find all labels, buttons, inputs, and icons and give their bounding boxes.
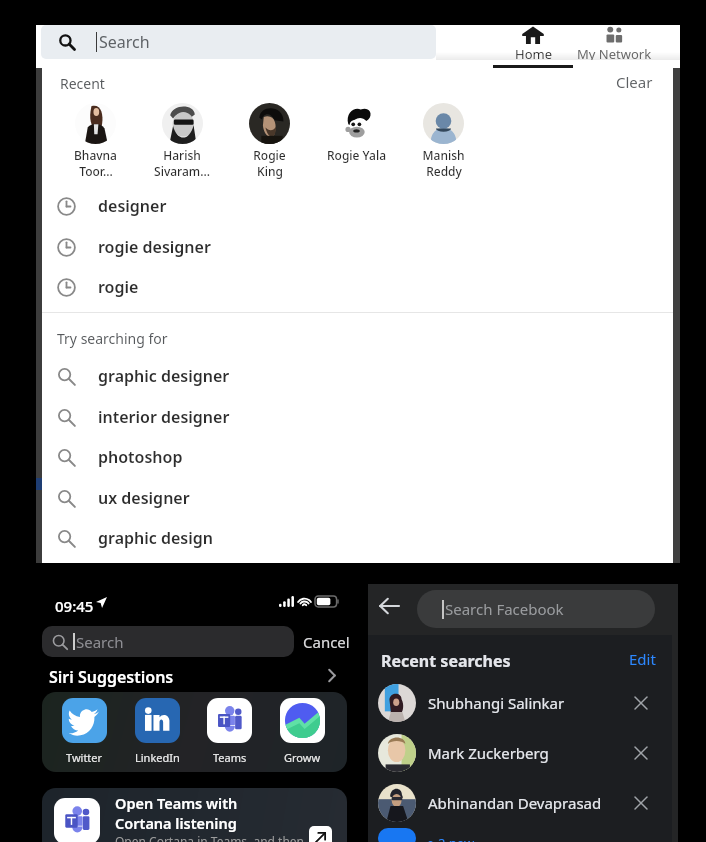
staticText: 09:45 — [55, 596, 94, 616]
staticText: Groww — [284, 750, 321, 765]
staticText: My Network — [577, 45, 652, 60]
staticText: Search — [99, 31, 150, 53]
button[interactable]: Remove — [628, 740, 654, 766]
button[interactable]: Open Teams with — [42, 788, 347, 842]
button[interactable]: Teams — [195, 698, 263, 770]
button[interactable]: Groww — [268, 698, 336, 770]
staticText: Toor... — [79, 163, 113, 179]
button[interactable]: photoshop — [42, 437, 673, 477]
button[interactable]: rogie designer — [42, 227, 673, 267]
staticText: Open Cortana in Teams, and then — [115, 833, 305, 842]
staticText: Search Facebook — [445, 599, 564, 619]
staticText: Siri Suggestions — [49, 666, 174, 688]
button[interactable]: Twitter — [50, 698, 118, 770]
staticText: Shubhangi Salinkar — [428, 693, 565, 713]
button[interactable]: Harish — [148, 103, 216, 183]
staticText: Try searching for — [57, 329, 168, 348]
button[interactable]: LinkedIn — [123, 698, 191, 770]
button[interactable]: graphic design — [42, 518, 673, 558]
staticText: Twitter — [66, 750, 103, 765]
button[interactable]: Remove — [628, 690, 654, 716]
staticText: ux designer — [98, 487, 190, 509]
button[interactable]: Shubhangi Salinkar — [368, 678, 672, 728]
staticText: designer — [98, 195, 167, 217]
button[interactable]: Edit — [620, 644, 664, 674]
button[interactable]: Twitter — [42, 692, 347, 772]
staticText: graphic design — [98, 527, 213, 549]
staticText: photoshop — [98, 446, 183, 468]
button[interactable]: Mark Zuckerberg — [368, 728, 672, 778]
button[interactable]: rogie — [42, 267, 673, 307]
staticText: Edit — [629, 649, 656, 669]
staticText: Manish — [422, 147, 465, 163]
button[interactable]: Clear — [607, 68, 662, 96]
button[interactable]: Cancel — [298, 626, 354, 657]
staticText: LinkedIn — [135, 750, 180, 765]
staticText: Bhavna — [74, 147, 117, 163]
staticText: Cancel — [303, 632, 350, 652]
staticText: Rogie — [253, 147, 286, 163]
staticText: Home — [515, 45, 552, 60]
button[interactable]: Back — [373, 590, 405, 622]
button[interactable]: Bhavna — [61, 103, 129, 183]
button[interactable]: designer — [42, 186, 673, 226]
button[interactable]: Abhinandan Devaprasad — [368, 778, 672, 828]
staticText: Sivaram... — [154, 163, 210, 179]
staticText: Cortana listening — [115, 813, 237, 833]
button[interactable]: Home — [497, 25, 569, 60]
staticText: graphic designer — [98, 365, 230, 387]
staticText: Reddy — [426, 163, 462, 179]
button[interactable]: My Network — [564, 25, 664, 60]
staticText: Rogie Yala — [327, 147, 386, 163]
staticText: Harish — [163, 147, 201, 163]
staticText: interior designer — [98, 406, 230, 428]
staticText: rogie — [98, 276, 139, 298]
staticText: Abhinandan Devaprasad — [428, 793, 602, 813]
button[interactable]: Search — [42, 626, 294, 657]
staticText: Open Teams with — [115, 793, 238, 813]
staticText: King — [257, 163, 283, 179]
button[interactable]: 2 new — [368, 828, 672, 842]
staticText: Teams — [213, 750, 247, 765]
staticText: Recent — [60, 74, 105, 93]
staticText: Recent searches — [381, 650, 511, 672]
button[interactable]: Rogie Yala — [322, 103, 390, 183]
staticText: Mark Zuckerberg — [428, 743, 549, 763]
button[interactable]: Rogie — [235, 103, 303, 183]
button[interactable]: graphic designer — [42, 356, 673, 396]
button[interactable]: Remove — [628, 790, 654, 816]
staticText: 2 new — [438, 834, 475, 842]
button[interactable]: Open — [309, 826, 332, 842]
staticText: Search — [76, 632, 124, 652]
button[interactable]: Search Facebook — [417, 590, 655, 628]
button[interactable]: Manish — [409, 103, 477, 183]
button[interactable]: interior designer — [42, 397, 673, 437]
button[interactable]: Search — [41, 25, 436, 59]
other: More — [328, 669, 336, 682]
staticText: Clear — [616, 72, 653, 92]
button[interactable]: ux designer — [42, 478, 673, 518]
staticText: rogie designer — [98, 236, 211, 258]
